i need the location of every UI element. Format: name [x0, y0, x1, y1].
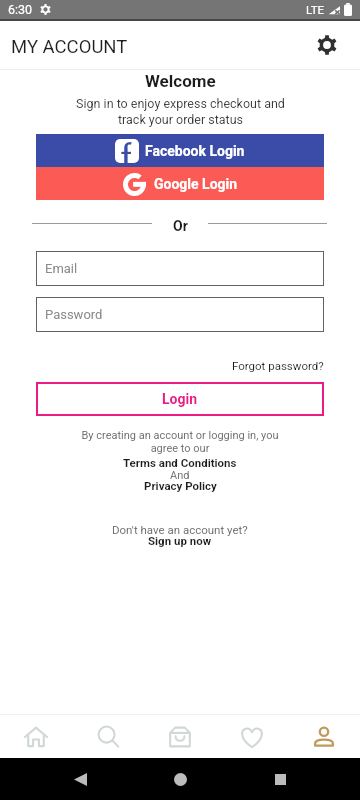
button[interactable]: Back	[60, 759, 100, 799]
button[interactable]: Settings	[310, 28, 344, 62]
staticText: MY ACCOUNT	[11, 36, 128, 58]
staticText: Facebook Login	[145, 143, 245, 159]
staticText: Or	[173, 218, 188, 234]
staticText: LTE	[306, 3, 325, 16]
staticText: Login	[162, 391, 198, 407]
button[interactable]: Email	[36, 251, 324, 286]
button[interactable]: Home	[160, 759, 200, 799]
staticText: Welcome	[145, 71, 216, 91]
button[interactable]: Search	[72, 715, 144, 758]
button[interactable]: Recents	[260, 759, 300, 799]
staticText: And	[170, 469, 190, 482]
button[interactable]: Home	[0, 715, 72, 758]
button[interactable]: Terms and Conditions	[123, 456, 237, 469]
staticText: By creating an account or logging in, yo…	[81, 429, 279, 455]
staticText: Password	[45, 307, 103, 322]
button[interactable]: Privacy Policy	[144, 479, 217, 492]
button[interactable]: Bag	[144, 715, 216, 758]
staticText: 6:30	[8, 2, 33, 17]
button[interactable]: Forgot password?	[232, 359, 324, 372]
button[interactable]: Login	[36, 382, 324, 416]
staticText: Don't have an account yet?	[112, 523, 248, 536]
staticText: Google Login	[154, 176, 238, 192]
button[interactable]: Wishlist	[216, 715, 288, 758]
button[interactable]: Password	[36, 297, 324, 332]
staticText: Sign in to enjoy express checkout and tr…	[76, 96, 285, 127]
staticText: Email	[45, 261, 78, 276]
button[interactable]: Google Login	[36, 167, 324, 200]
button[interactable]: Account	[288, 715, 360, 758]
button[interactable]: Sign up now	[148, 534, 212, 547]
button[interactable]: Facebook Login	[36, 134, 324, 167]
